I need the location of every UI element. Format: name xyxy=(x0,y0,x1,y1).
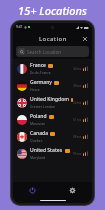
button[interactable]: United Kingdom xyxy=(13,94,92,111)
staticText: 44ms xyxy=(73,67,82,71)
staticText: Germany xyxy=(30,79,52,86)
staticText: Hesse xyxy=(30,87,40,92)
staticText: Poland xyxy=(30,113,47,120)
staticText: 15+ Locations xyxy=(18,3,87,18)
staticText: Ile-de-France xyxy=(30,70,51,75)
button[interactable]: Search Location xyxy=(16,46,89,57)
button[interactable]: Canada xyxy=(13,128,92,145)
button[interactable]: Close xyxy=(80,34,89,43)
staticText: Greater London xyxy=(30,104,56,109)
staticText: 61ms xyxy=(73,118,82,122)
button[interactable]: Power / Connect xyxy=(13,182,52,198)
staticText: Masovian xyxy=(30,121,46,126)
button[interactable]: Settings xyxy=(52,182,92,198)
staticText: United States xyxy=(30,147,63,154)
staticText: 9:41 xyxy=(16,25,23,29)
button[interactable]: United States xyxy=(13,145,92,162)
staticText: 38ms xyxy=(73,84,82,88)
staticText: 95ms xyxy=(73,152,82,156)
button[interactable]: Germany xyxy=(13,77,92,94)
staticText: Maryland xyxy=(30,155,46,160)
staticText: United Kingdom xyxy=(30,96,69,103)
button[interactable]: Poland xyxy=(13,111,92,128)
button[interactable]: France xyxy=(13,60,92,77)
staticText: 88ms xyxy=(73,135,82,139)
staticText: Canada xyxy=(30,130,48,137)
staticText: Location xyxy=(39,35,67,43)
staticText: Quebec xyxy=(30,138,43,143)
staticText: 52ms xyxy=(73,101,82,105)
staticText: France xyxy=(30,62,46,69)
staticText: Search Location xyxy=(27,49,62,55)
